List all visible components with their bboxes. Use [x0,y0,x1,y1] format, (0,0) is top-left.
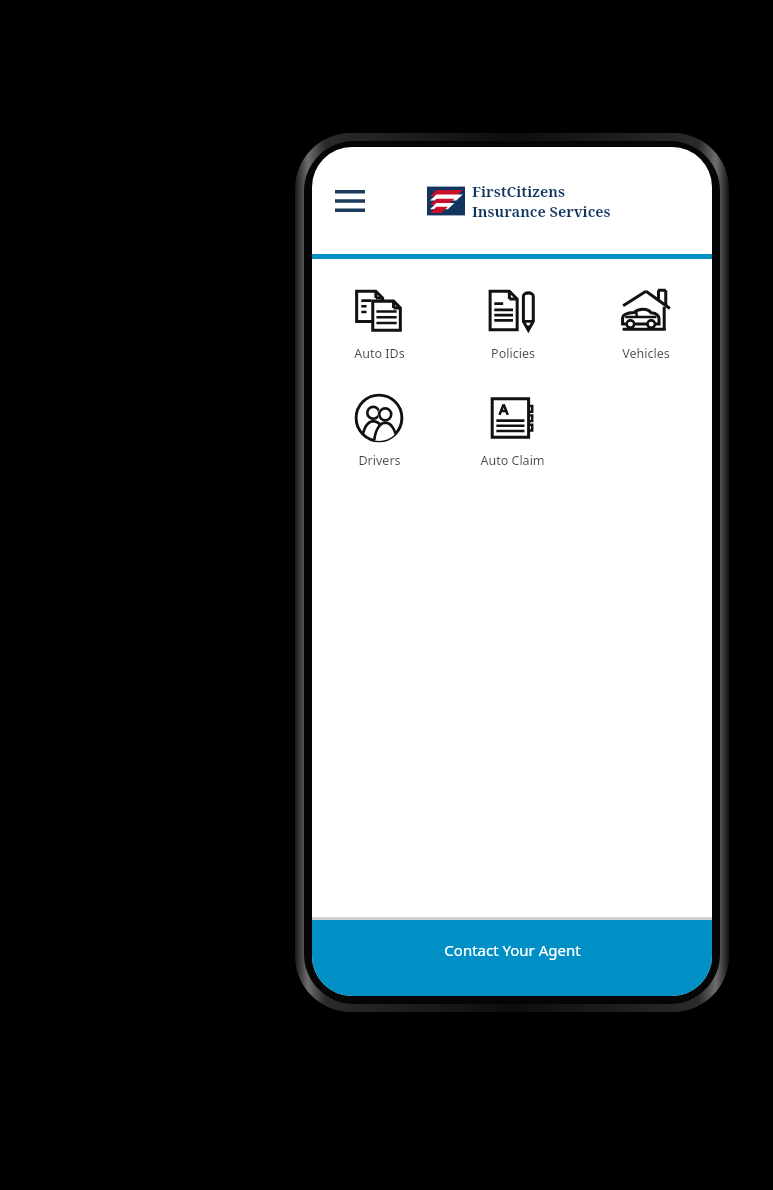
button[interactable]: Drivers [312,388,446,473]
staticText: Policies [491,345,535,362]
button[interactable]: Policies [446,281,579,366]
button[interactable]: Contact Your Agent [312,920,712,996]
staticText: Contact Your Agent [444,940,581,960]
staticText: Auto IDs [354,345,405,362]
button[interactable]: FirstCitizens [426,181,611,221]
staticText: Insurance Services [472,201,611,221]
button[interactable]: Auto IDs [312,281,446,366]
button[interactable]: Open navigation menu [326,177,374,225]
staticText: Drivers [358,452,401,469]
staticText: Vehicles [622,345,670,362]
staticText: FirstCitizens [472,181,565,201]
button[interactable]: Vehicles [579,281,712,366]
button[interactable]: Auto Claim [446,388,579,473]
staticText: Auto Claim [480,452,545,469]
